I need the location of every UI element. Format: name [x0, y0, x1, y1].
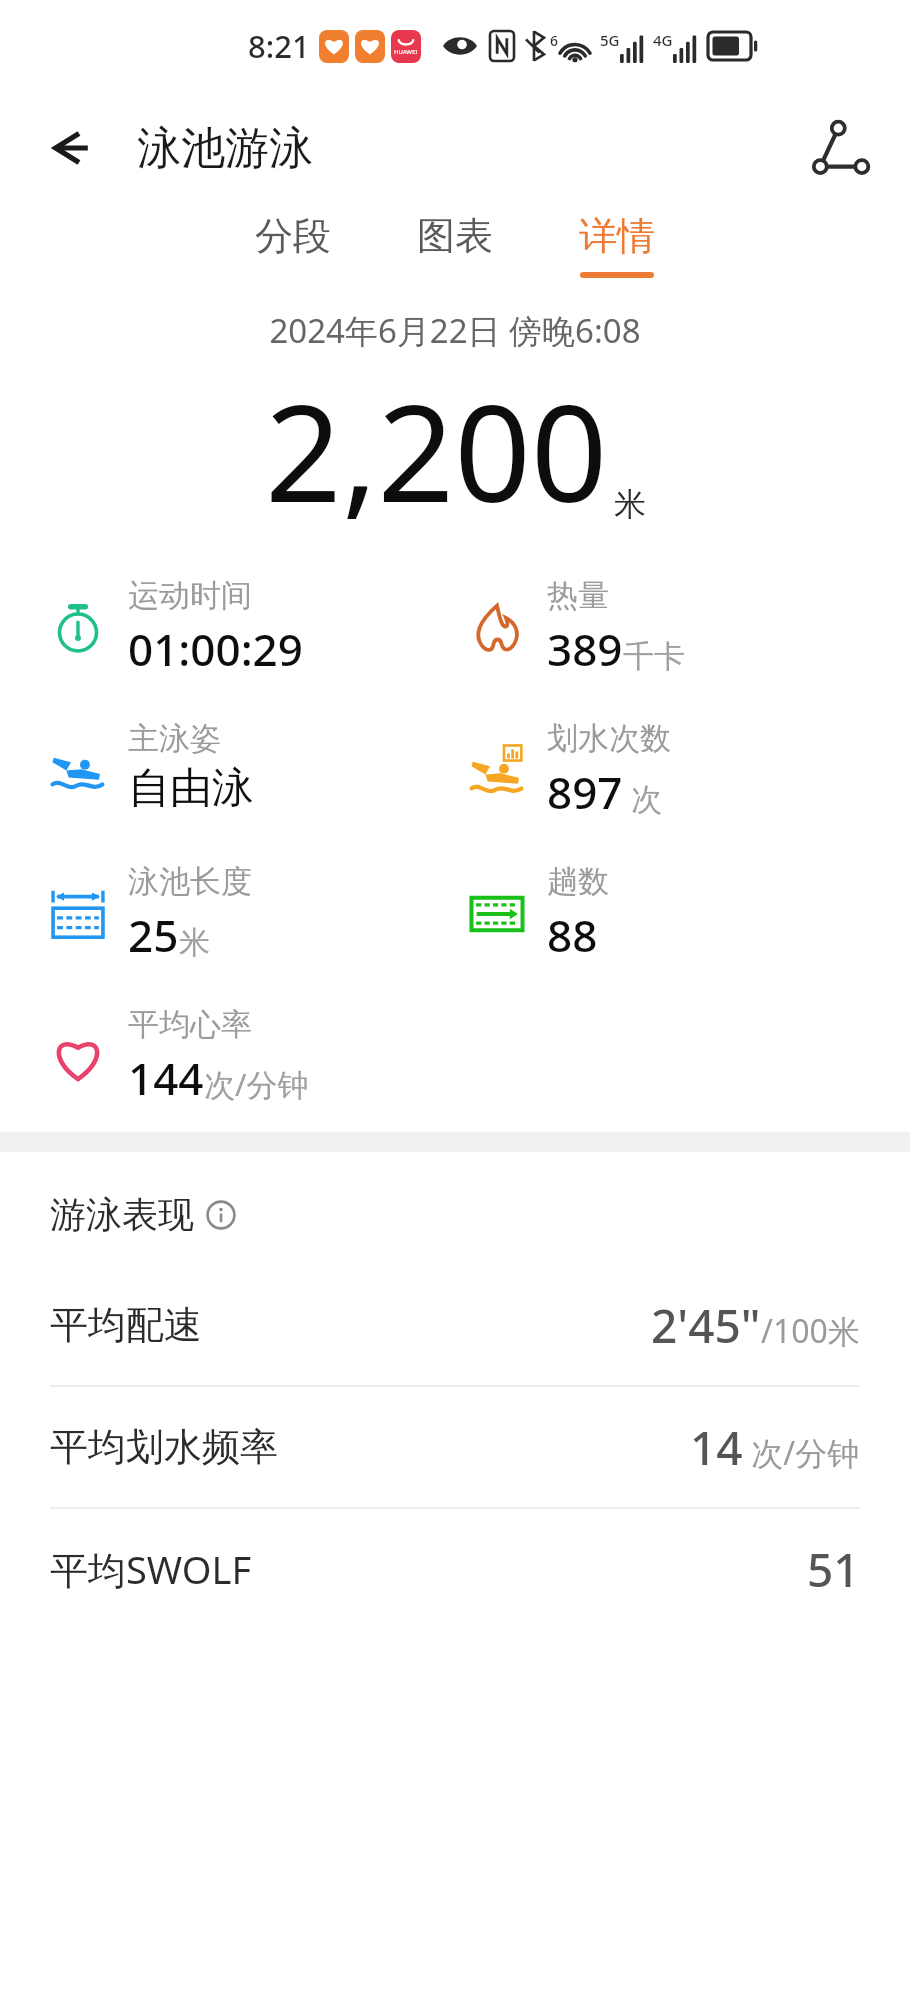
button[interactable]: 平均划水频率: [0, 1387, 910, 1507]
staticText: 平均划水频率: [50, 1423, 278, 1471]
staticText: 图表: [417, 212, 493, 260]
staticText: 分段: [255, 212, 331, 260]
staticText: 泳池游泳: [137, 121, 313, 176]
staticText: 6: [550, 31, 559, 50]
staticText: 8:21: [248, 25, 310, 67]
button[interactable]: 热量: [465, 576, 685, 679]
staticText: 51: [807, 1538, 860, 1601]
staticText: 5G: [600, 30, 620, 50]
staticText: 4G: [653, 30, 673, 50]
staticText: 次: [623, 777, 663, 819]
button[interactable]: 泳池长度: [46, 862, 252, 965]
button[interactable]: 详情: [551, 204, 683, 286]
staticText: 千卡: [623, 637, 685, 676]
staticText: 自由泳: [128, 762, 254, 815]
staticText: HUAWEI: [394, 48, 418, 56]
staticText: 平均心率: [128, 1005, 252, 1044]
button[interactable]: Share: [804, 110, 880, 186]
staticText: 2,200: [265, 359, 608, 542]
staticText: 01:00:29: [128, 619, 303, 679]
staticText: 运动时间: [128, 576, 252, 615]
staticText: 泳池长度: [128, 862, 252, 901]
staticText: 平均SWOLF: [50, 1543, 252, 1595]
staticText: 897: [547, 762, 623, 822]
staticText: 详情: [579, 212, 655, 260]
button[interactable]: 划水次数: [465, 719, 671, 822]
staticText: 主泳姿: [128, 719, 221, 758]
button[interactable]: 图表: [389, 204, 521, 286]
button[interactable]: 趟数: [465, 862, 609, 965]
staticText: 次/分钟: [743, 1431, 860, 1475]
staticText: 2024年6月22日 傍晚6:08: [0, 308, 910, 353]
staticText: 144: [128, 1048, 204, 1108]
staticText: 热量: [547, 576, 609, 615]
staticText: 划水次数: [547, 719, 671, 758]
button[interactable]: 分段: [227, 204, 359, 286]
staticText: 游泳表现: [50, 1192, 194, 1237]
staticText: 14: [690, 1416, 743, 1479]
button[interactable]: 运动时间: [46, 576, 303, 679]
staticText: /100米: [761, 1309, 860, 1353]
button[interactable]: 游泳表现: [0, 1152, 910, 1265]
staticText: 2'45": [651, 1294, 761, 1357]
staticText: 平均配速: [50, 1301, 202, 1349]
staticText: 趟数: [547, 862, 609, 901]
staticText: 389: [547, 619, 623, 679]
button[interactable]: 平均SWOLF: [0, 1509, 910, 1629]
button[interactable]: Back: [32, 112, 104, 184]
staticText: 88: [547, 905, 598, 965]
button[interactable]: 平均配速: [0, 1265, 910, 1385]
staticText: 次/分钟: [204, 1063, 309, 1105]
staticText: 25: [128, 905, 179, 965]
staticText: 米: [179, 923, 210, 962]
button[interactable]: 主泳姿: [46, 719, 254, 815]
button[interactable]: 平均心率: [46, 1005, 309, 1108]
staticText: 米: [614, 484, 646, 524]
